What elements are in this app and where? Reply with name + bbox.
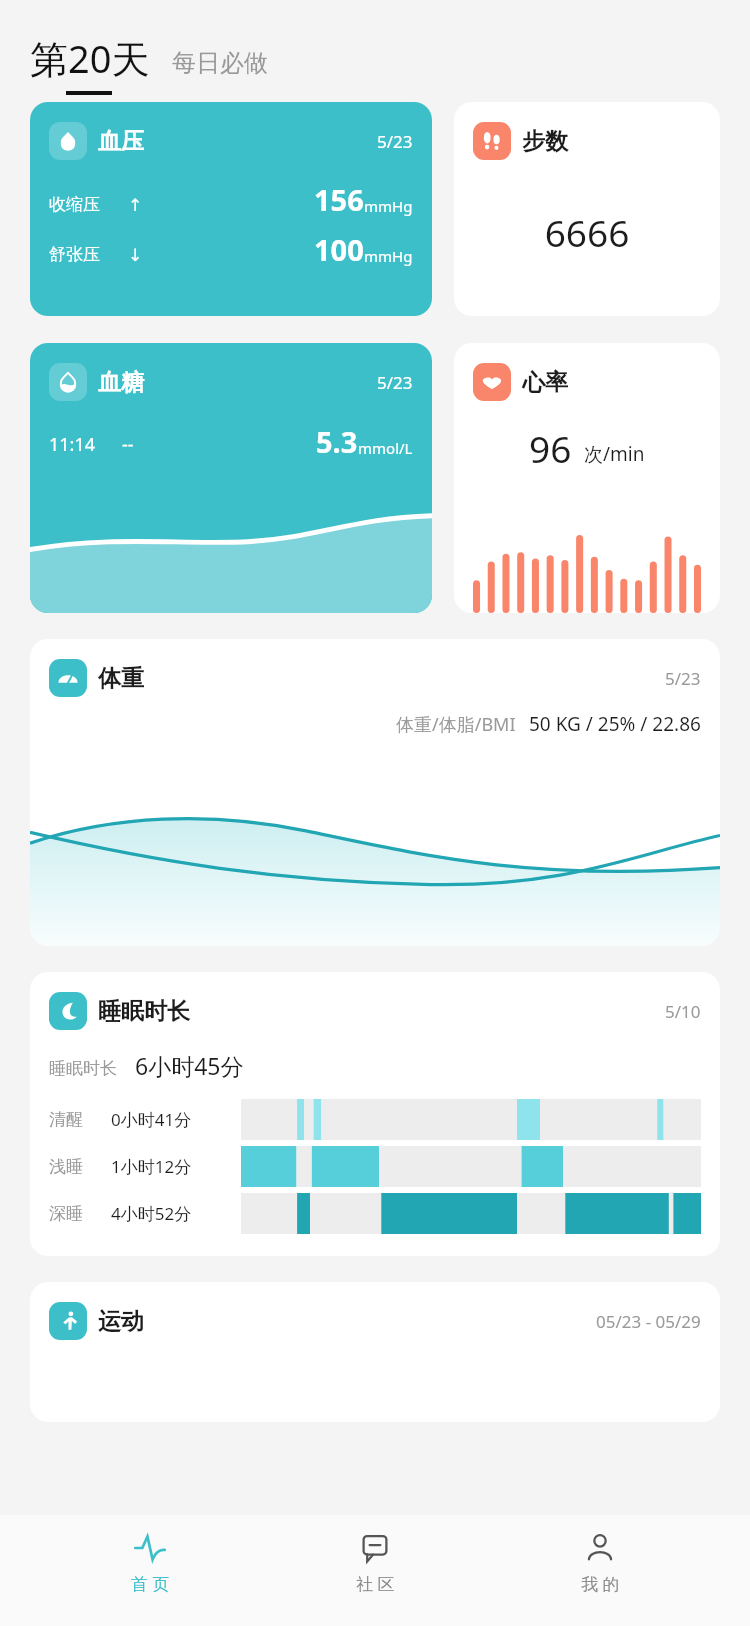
button[interactable]: 血压 <box>30 102 432 316</box>
staticText: mmHg <box>364 246 413 266</box>
staticText: 体重 <box>98 664 144 693</box>
button[interactable]: 心率 <box>454 343 720 613</box>
staticText: 社 区 <box>356 1572 395 1595</box>
staticText: 体重/体脂/BMI <box>396 712 516 737</box>
staticText: 05/23 - 05/29 <box>596 1310 701 1333</box>
button[interactable]: 步数 <box>454 102 720 316</box>
staticText: 5/23 <box>665 667 701 690</box>
staticText: 睡眠时长 <box>98 997 190 1026</box>
staticText: mmHg <box>364 196 413 216</box>
staticText: 0小时41分 <box>111 1108 241 1131</box>
staticText: 血压 <box>98 127 144 156</box>
button[interactable]: Community <box>300 1531 450 1595</box>
staticText: 舒张压 <box>49 244 100 265</box>
staticText: 1小时12分 <box>111 1155 241 1178</box>
button[interactable]: 睡眠时长 <box>30 972 720 1256</box>
staticText: 100 <box>314 230 364 269</box>
staticText: 清醒 <box>49 1109 111 1130</box>
staticText: 我 的 <box>581 1572 620 1595</box>
staticText: 浅睡 <box>49 1156 111 1177</box>
staticText: ↑ <box>128 195 143 215</box>
staticText: 次/min <box>584 441 645 467</box>
button[interactable]: 体重 <box>30 639 720 946</box>
staticText: 5.3 <box>316 422 358 461</box>
staticText: 步数 <box>522 127 568 156</box>
staticText: 血糖 <box>98 368 144 397</box>
staticText: 每日必做 <box>172 48 268 78</box>
staticText: 4小时52分 <box>111 1202 241 1225</box>
staticText: 第20天 <box>30 32 150 84</box>
staticText: 6666 <box>473 207 701 257</box>
staticText: 5/23 <box>377 130 413 153</box>
staticText: 深睡 <box>49 1203 111 1224</box>
button[interactable]: Home <box>75 1531 225 1595</box>
staticText: -- <box>122 432 134 457</box>
staticText: 6小时45分 <box>135 1050 244 1081</box>
button[interactable]: 血糖 <box>30 343 432 613</box>
staticText: 50 KG / 25% / 22.86 <box>529 711 701 737</box>
staticText: ↓ <box>128 245 143 265</box>
staticText: 睡眠时长 <box>49 1058 117 1079</box>
staticText: 96 <box>529 423 572 473</box>
staticText: mmol/L <box>358 438 413 458</box>
staticText: 5/23 <box>377 371 413 394</box>
staticText: 首 页 <box>131 1572 170 1595</box>
button[interactable]: 运动 <box>30 1282 720 1422</box>
staticText: 5/10 <box>665 1000 701 1023</box>
staticText: 156 <box>314 180 364 219</box>
staticText: 收缩压 <box>49 194 100 215</box>
button[interactable]: Profile <box>525 1531 675 1595</box>
staticText: 心率 <box>522 368 568 397</box>
staticText: 11:14 <box>49 432 96 457</box>
staticText: 运动 <box>98 1307 144 1336</box>
